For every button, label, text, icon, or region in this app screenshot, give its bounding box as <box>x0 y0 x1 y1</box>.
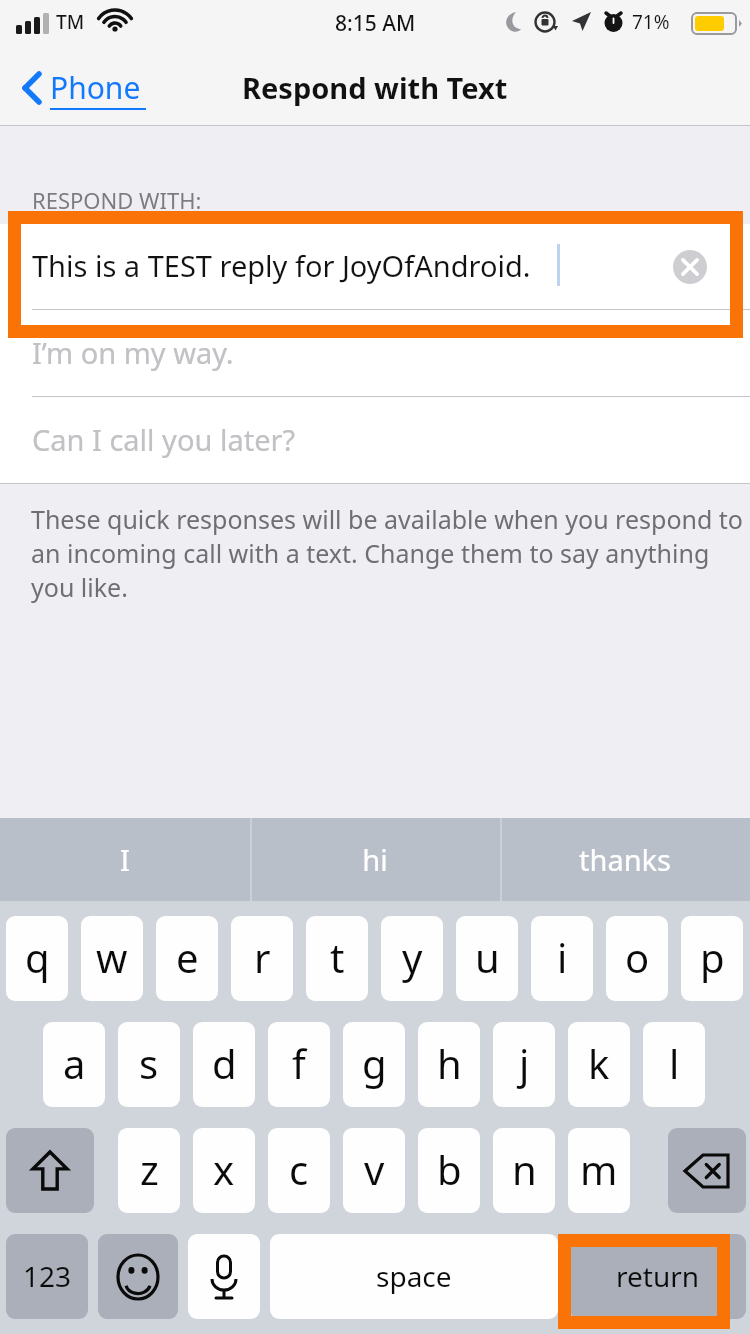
button[interactable]: space <box>270 1234 558 1319</box>
staticText: This is a TEST reply for JoyOfAndroid. <box>32 246 531 285</box>
button[interactable]: v <box>343 1128 405 1213</box>
staticText: u <box>475 930 500 984</box>
button[interactable]: Emoji <box>98 1234 178 1319</box>
staticText: e <box>176 930 199 984</box>
button[interactable]: c <box>268 1128 330 1213</box>
staticText: hi <box>362 840 388 879</box>
button[interactable]: e <box>156 916 218 1001</box>
button[interactable]: r <box>231 916 293 1001</box>
button[interactable]: n <box>493 1128 555 1213</box>
staticText: k <box>588 1036 610 1090</box>
staticText: p <box>700 930 725 984</box>
staticText: t <box>330 930 345 984</box>
staticText: f <box>292 1036 306 1090</box>
staticText: 8:15 AM <box>335 9 416 38</box>
staticText: i <box>557 930 568 984</box>
button[interactable]: z <box>118 1128 180 1213</box>
button[interactable]: Backspace <box>668 1128 746 1213</box>
staticText: c <box>289 1142 309 1196</box>
staticText: b <box>437 1142 462 1196</box>
button[interactable]: g <box>343 1022 405 1107</box>
staticText: y <box>402 930 423 984</box>
button[interactable]: b <box>418 1128 480 1213</box>
button[interactable]: w <box>81 916 143 1001</box>
staticText: q <box>25 930 50 984</box>
staticText: return <box>616 1257 700 1295</box>
button[interactable]: l <box>643 1022 705 1107</box>
button[interactable]: I’m on my way. <box>0 310 750 397</box>
button[interactable]: Dictation <box>188 1234 260 1319</box>
staticText: m <box>580 1142 618 1196</box>
button[interactable]: q <box>6 916 68 1001</box>
button[interactable]: hi <box>250 818 500 901</box>
staticText: v <box>364 1142 385 1196</box>
button[interactable]: o <box>606 916 668 1001</box>
staticText: a <box>63 1036 86 1090</box>
button[interactable]: 123 <box>6 1234 88 1319</box>
button[interactable]: Can I call you later? <box>0 397 750 484</box>
staticText: TM <box>56 9 85 35</box>
staticText: h <box>437 1036 462 1090</box>
button[interactable]: d <box>193 1022 255 1107</box>
button[interactable]: p <box>681 916 743 1001</box>
staticText: l <box>669 1036 680 1090</box>
button[interactable]: m <box>568 1128 630 1213</box>
button[interactable]: y <box>381 916 443 1001</box>
staticText: z <box>140 1142 159 1196</box>
staticText: space <box>376 1257 452 1295</box>
button[interactable]: a <box>43 1022 105 1107</box>
staticText: 123 <box>23 1257 72 1295</box>
button[interactable]: f <box>268 1022 330 1107</box>
staticText: Can I call you later? <box>32 420 296 459</box>
staticText: Phone <box>50 67 141 108</box>
staticText: d <box>212 1036 237 1090</box>
button[interactable]: Clear text <box>673 250 707 284</box>
staticText: g <box>362 1036 387 1090</box>
button[interactable]: u <box>456 916 518 1001</box>
button[interactable]: t <box>306 916 368 1001</box>
staticText: 71% <box>632 9 670 35</box>
staticText: x <box>213 1142 235 1196</box>
button[interactable]: x <box>193 1128 255 1213</box>
staticText: thanks <box>579 840 671 879</box>
button[interactable]: s <box>118 1022 180 1107</box>
button[interactable]: Shift <box>6 1128 94 1213</box>
staticText: Respond with Text <box>242 68 508 107</box>
button[interactable]: k <box>568 1022 630 1107</box>
button[interactable]: i <box>531 916 593 1001</box>
button[interactable]: j <box>493 1022 555 1107</box>
staticText: s <box>139 1036 159 1090</box>
staticText: I’m on my way. <box>32 333 234 372</box>
button[interactable]: h <box>418 1022 480 1107</box>
button[interactable]: return <box>570 1234 746 1319</box>
button[interactable]: This is a TEST reply for JoyOfAndroid. <box>0 224 750 310</box>
button[interactable]: Phone <box>14 59 149 116</box>
button[interactable]: I <box>0 818 250 901</box>
button[interactable]: thanks <box>500 818 750 901</box>
staticText: n <box>512 1142 537 1196</box>
staticText: r <box>254 930 271 984</box>
staticText: These quick responses will be available … <box>31 502 743 604</box>
staticText: I <box>120 840 130 879</box>
staticText: j <box>519 1036 530 1090</box>
staticText: w <box>96 930 128 984</box>
staticText: RESPOND WITH: <box>32 185 202 215</box>
staticText: o <box>625 930 650 984</box>
